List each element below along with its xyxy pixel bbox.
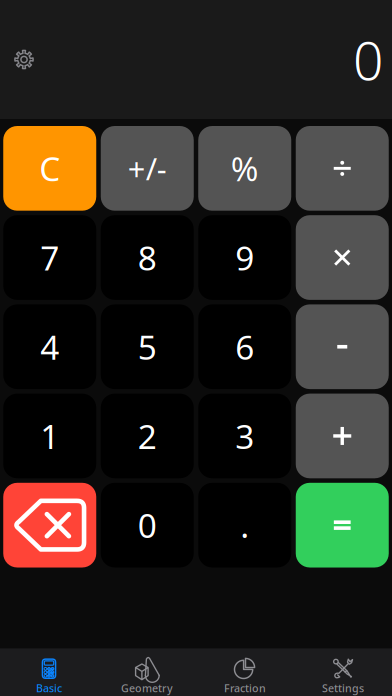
button[interactable]: 3	[198, 394, 291, 478]
button[interactable]: C	[3, 126, 96, 211]
button[interactable]: 7	[3, 215, 96, 300]
button[interactable]: 4	[3, 304, 96, 389]
staticText: 4	[40, 325, 59, 369]
staticText: Geometry	[121, 681, 173, 695]
button[interactable]: Basic	[0, 648, 98, 696]
button[interactable]: 6	[198, 304, 291, 389]
button[interactable]: .	[198, 483, 291, 567]
button[interactable]: Fraction	[196, 648, 294, 696]
button[interactable]	[296, 126, 389, 211]
staticText: %	[231, 146, 259, 190]
staticText: Fraction	[224, 681, 266, 695]
staticText: 8	[138, 235, 157, 280]
button[interactable]: 1	[3, 394, 96, 478]
button[interactable]	[296, 304, 389, 389]
staticText: 6	[235, 325, 254, 369]
staticText: 0	[353, 24, 383, 95]
staticText: .	[240, 503, 249, 547]
staticText: 2	[138, 414, 157, 458]
button[interactable]: Geometry	[98, 648, 196, 696]
staticText: 7	[40, 235, 59, 280]
button[interactable]: %	[198, 126, 291, 211]
staticText: 9	[235, 235, 254, 280]
button[interactable]: +/-	[101, 126, 194, 211]
button[interactable]: Settings	[294, 648, 392, 696]
button[interactable]: 0	[101, 483, 194, 567]
staticText: 0	[138, 503, 157, 547]
button[interactable]: Settings	[6, 41, 42, 77]
button[interactable]	[296, 483, 389, 567]
staticText: +/-	[128, 148, 167, 189]
button[interactable]: 8	[101, 215, 194, 300]
staticText: 1	[40, 414, 59, 458]
staticText: 3	[235, 414, 254, 458]
staticText: C	[39, 146, 60, 190]
staticText: Basic	[36, 681, 62, 695]
button[interactable]	[296, 215, 389, 300]
button[interactable]: 5	[101, 304, 194, 389]
staticText: 5	[138, 325, 157, 369]
button[interactable]: 9	[198, 215, 291, 300]
staticText: Settings	[322, 681, 364, 695]
button[interactable]: 2	[101, 394, 194, 478]
button[interactable]	[296, 394, 389, 478]
button[interactable]	[3, 483, 96, 567]
